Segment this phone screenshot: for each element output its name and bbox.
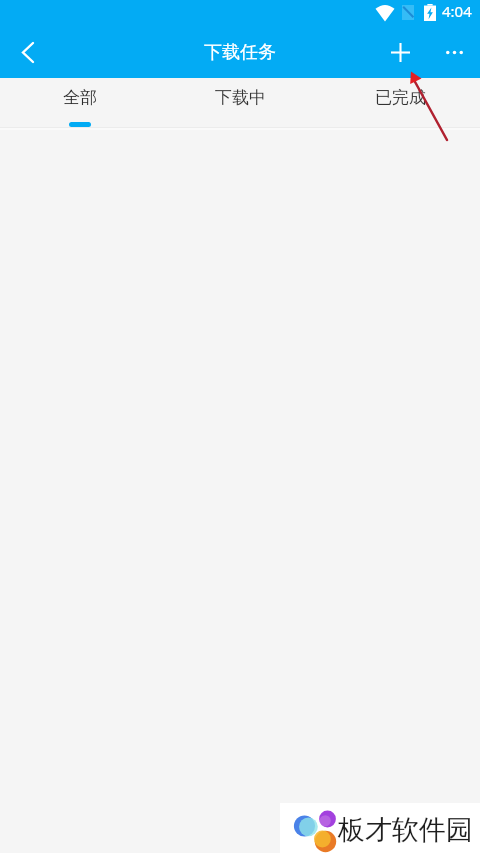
staticText: 下载中 [215,87,266,108]
staticText: 4:04 [442,1,472,21]
button[interactable]: Back [2,30,54,74]
staticText: 全部 [63,87,97,108]
staticText: 已完成 [375,87,426,108]
staticText: 板才软件园 [338,813,473,847]
button[interactable]: 全部 [0,78,160,127]
button[interactable]: Add [378,30,423,74]
button[interactable]: 下载中 [160,78,320,127]
staticText: 下载任务 [204,41,276,64]
button[interactable]: More options [432,30,476,74]
button[interactable]: 已完成 [320,78,480,127]
